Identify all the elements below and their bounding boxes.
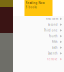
button[interactable]: Fifth	[13, 39, 64, 45]
button[interactable]: First item	[13, 16, 64, 22]
staticText: Third one	[44, 29, 58, 32]
staticText: Fourth	[49, 34, 58, 38]
button[interactable]: Second	[13, 22, 64, 28]
button[interactable]: Seventh	[13, 50, 64, 56]
staticText: Reading Now	[25, 1, 44, 5]
staticText: First item	[46, 17, 58, 21]
staticText: Fifth	[52, 40, 58, 44]
staticText: Remove	[47, 57, 58, 61]
button[interactable]: Remove	[13, 56, 64, 62]
staticText: 8 books	[25, 5, 36, 9]
staticText: Sixth	[52, 46, 58, 49]
staticText: Seventh	[48, 52, 58, 55]
staticText: Second	[48, 23, 58, 26]
button[interactable]: Fourth	[13, 33, 64, 39]
button[interactable]: Third one	[13, 27, 64, 33]
button[interactable]: Sixth	[13, 45, 64, 51]
